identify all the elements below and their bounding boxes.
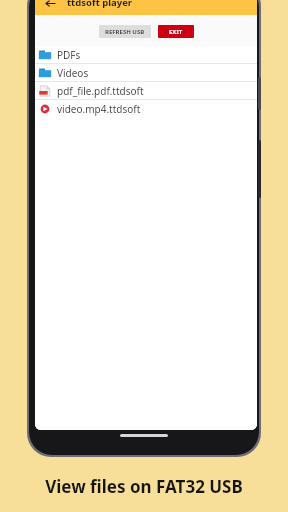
staticText: ttdsoft player: [67, 0, 133, 9]
button[interactable]: Back: [40, 0, 60, 13]
button[interactable]: pdf_file.pdf.ttdsoft: [35, 82, 257, 99]
button[interactable]: video.mp4.ttdsoft: [35, 100, 257, 117]
button[interactable]: PDFs: [35, 46, 257, 63]
staticText: PDFs: [57, 48, 81, 62]
button[interactable]: Videos: [35, 64, 257, 81]
button[interactable]: EXIT: [158, 25, 194, 38]
staticText: pdf_file.pdf.ttdsoft: [57, 84, 144, 98]
staticText: video.mp4.ttdsoft: [57, 102, 141, 116]
staticText: EXIT: [169, 28, 183, 36]
button[interactable]: REFRESH USB: [99, 25, 151, 38]
staticText: REFRESH USB: [105, 28, 145, 36]
staticText: Videos: [57, 66, 89, 80]
staticText: View files on FAT32 USB: [0, 475, 288, 498]
